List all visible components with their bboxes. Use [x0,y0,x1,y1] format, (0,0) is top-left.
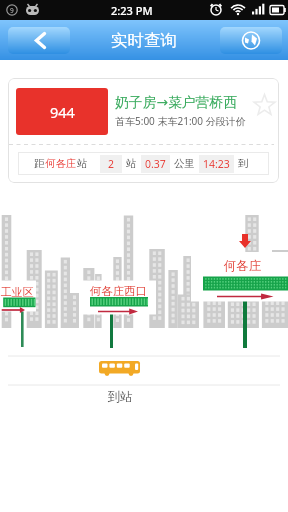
staticText: 9 [10,6,14,15]
button[interactable]: Back [8,27,70,54]
staticText: 工业区 [0,285,36,299]
staticText: 2 [108,157,115,171]
staticText: 站 [77,157,88,170]
staticText: 首车5:00 末车21:00 分段计价 [115,114,246,128]
staticText: 到站 [92,389,148,405]
staticText: 2:23 PM [111,3,153,18]
staticText: 14:23 [203,157,230,171]
staticText: 站 [126,157,137,170]
staticText: 公里 [174,157,195,170]
staticText: 0.37 [145,157,166,171]
staticText: 何各庄 [197,258,288,274]
staticText: 何各庄 [45,157,77,170]
button[interactable]: Map [220,27,282,54]
staticText: 何各庄西口 [81,284,156,298]
staticText: 944 [50,102,75,122]
staticText: 到 [238,157,249,170]
staticText: 奶子房→菜户营桥西 [115,94,237,111]
staticText: 距 [34,157,45,170]
staticText: 实时查询 [111,30,177,51]
button[interactable]: Favorite [252,93,277,118]
